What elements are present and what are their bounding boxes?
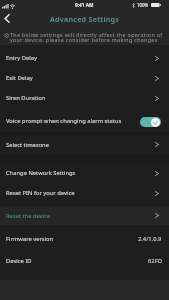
staticText: 62FD xyxy=(148,257,162,265)
staticText: Reset PIN for your device xyxy=(6,189,75,197)
button[interactable]: Entry Delay xyxy=(0,48,169,68)
button[interactable]: Change Network Settings xyxy=(0,163,169,183)
button[interactable] xyxy=(4,14,10,23)
staticText: Firmware version xyxy=(6,235,54,243)
staticText: Reset the device xyxy=(6,212,51,220)
button[interactable]: Voice prompt when changing alarm status xyxy=(0,108,169,132)
staticText: Change Network Settings xyxy=(6,169,76,177)
staticText: Device ID xyxy=(6,257,32,265)
staticText: Advanced Settings xyxy=(50,14,120,24)
button[interactable]: Reset the device xyxy=(0,206,169,225)
staticText: Voice prompt when changing alarm status xyxy=(6,117,122,125)
button[interactable]: Exit Delay xyxy=(0,68,169,88)
button[interactable]: Reset PIN for your device xyxy=(0,183,169,203)
staticText: Entry Delay xyxy=(6,54,37,62)
staticText: The below settings will directly affect … xyxy=(10,31,163,43)
staticText: 9:41 AM xyxy=(75,2,94,9)
staticText: 2.4/1.0.9 xyxy=(138,235,162,243)
staticText: 100% xyxy=(137,2,149,8)
staticText: Siren Duration xyxy=(6,94,46,102)
button[interactable]: Siren Duration xyxy=(0,88,169,108)
staticText: Select timezone xyxy=(6,141,49,149)
button[interactable]: Select timezone xyxy=(0,135,169,154)
staticText: Exit Delay xyxy=(6,74,33,82)
button[interactable] xyxy=(140,117,161,127)
